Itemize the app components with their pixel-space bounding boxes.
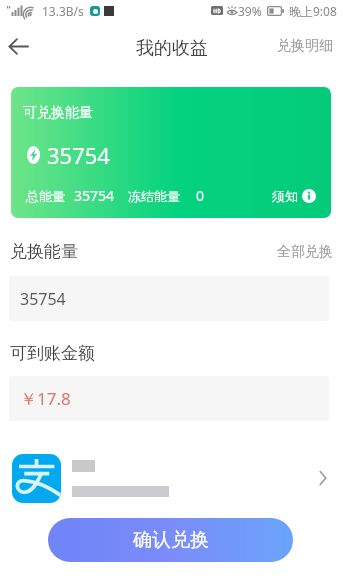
button[interactable]: 兑换明细 (267, 29, 343, 63)
button[interactable] (0, 444, 343, 512)
staticText: 可到账金额 (10, 343, 95, 364)
staticText: 39% (238, 3, 262, 19)
staticText: 35754 (47, 140, 110, 170)
staticText: 须知 (272, 188, 298, 204)
staticText: 兑换能量 (10, 241, 78, 262)
staticText: 0 (196, 186, 205, 205)
staticText: 兑换明细 (277, 37, 333, 55)
button[interactable]: Back (1, 29, 35, 63)
staticText: 可兑换能量 (23, 104, 93, 122)
staticText: 我的收益 (136, 37, 208, 60)
staticText: 13.3B/s (42, 3, 84, 19)
button[interactable]: 全部兑换 (277, 243, 333, 261)
staticText: 全部兑换 (277, 243, 333, 261)
staticText: 冻结能量 (128, 188, 180, 204)
staticText: 确认兑换 (133, 528, 209, 552)
staticText: 35754 (74, 186, 115, 205)
staticText: 35754 (20, 288, 66, 310)
staticText: ￥17.8 (20, 387, 71, 410)
button[interactable]: 确认兑换 (48, 518, 293, 562)
button[interactable]: 须知 (272, 188, 316, 204)
staticText: 晚上9:08 (289, 3, 337, 19)
staticText: 总能量 (26, 188, 65, 204)
